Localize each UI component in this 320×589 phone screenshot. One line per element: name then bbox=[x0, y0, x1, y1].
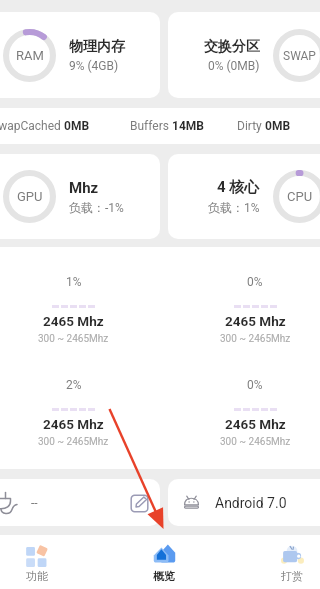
staticText: RAM bbox=[16, 48, 44, 63]
staticText: 9% (4GB) bbox=[69, 59, 119, 73]
staticText: 交换分区 bbox=[204, 38, 260, 56]
button[interactable]: 2% bbox=[0, 378, 164, 448]
button[interactable]: 交换分区 bbox=[168, 12, 320, 98]
button[interactable]: Charger bbox=[0, 479, 160, 526]
staticText: 概览 bbox=[153, 569, 175, 583]
staticText: 0MB bbox=[265, 119, 291, 133]
staticText: Dirty bbox=[237, 119, 265, 133]
other: Edit bbox=[129, 493, 150, 514]
staticText: CPU bbox=[287, 189, 313, 204]
button[interactable]: SwapCached bbox=[0, 108, 320, 144]
staticText: 打赏 bbox=[281, 569, 303, 583]
button[interactable]: 功能 bbox=[0, 535, 100, 589]
staticText: 14MB bbox=[172, 119, 204, 133]
button[interactable]: RAM bbox=[0, 12, 160, 98]
button[interactable]: 概览 bbox=[100, 535, 228, 589]
staticText: 2465 Mhz bbox=[225, 416, 286, 432]
staticText: 物理内存 bbox=[69, 38, 125, 56]
staticText: 300 ~ 2465Mhz bbox=[220, 436, 291, 448]
other: Charger bbox=[0, 491, 17, 515]
button[interactable]: 0% bbox=[164, 378, 320, 448]
staticText: 负载：1% bbox=[208, 200, 260, 215]
staticText: 功能 bbox=[26, 569, 48, 583]
staticText: 负载：-1% bbox=[69, 200, 124, 215]
staticText: SwapCached bbox=[0, 119, 64, 133]
staticText: -- bbox=[31, 496, 38, 510]
staticText: 300 ~ 2465Mhz bbox=[220, 333, 291, 345]
button[interactable]: 0% bbox=[164, 275, 320, 345]
button[interactable]: 1% bbox=[0, 275, 164, 345]
staticText: 300 ~ 2465Mhz bbox=[38, 436, 109, 448]
button[interactable]: 打赏 bbox=[228, 535, 320, 589]
staticText: 2% bbox=[66, 378, 82, 392]
staticText: 1% bbox=[66, 275, 82, 289]
staticText: 0% bbox=[247, 378, 263, 392]
staticText: 2465 Mhz bbox=[43, 416, 104, 432]
staticText: 0% (0MB) bbox=[208, 59, 260, 73]
staticText: SWAP bbox=[283, 49, 316, 63]
staticText: 0% bbox=[247, 275, 263, 289]
staticText: Mhz bbox=[69, 179, 99, 197]
button[interactable]: GPU bbox=[0, 154, 160, 239]
button[interactable]: 4 核心 bbox=[168, 154, 320, 239]
staticText: Buffers bbox=[130, 119, 172, 133]
staticText: 2465 Mhz bbox=[225, 313, 286, 329]
button[interactable]: Android 7.0 bbox=[168, 479, 320, 526]
staticText: 0MB bbox=[64, 119, 90, 133]
staticText: Android 7.0 bbox=[215, 495, 287, 511]
staticText: 2465 Mhz bbox=[43, 313, 104, 329]
staticText: 4 核心 bbox=[217, 178, 260, 197]
staticText: GPU bbox=[17, 189, 43, 204]
staticText: 300 ~ 2465Mhz bbox=[38, 333, 109, 345]
